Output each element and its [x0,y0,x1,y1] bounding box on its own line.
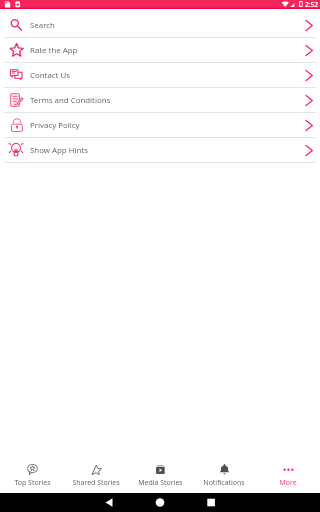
button[interactable]: Shared Stories [64,458,128,493]
button[interactable]: Contact Us [0,63,320,88]
staticText: Search [30,20,55,31]
button[interactable]: Search [0,13,320,38]
staticText: Contact Us [30,70,70,81]
button[interactable]: Top Stories [0,458,64,493]
staticText: Show App Hints [30,145,88,156]
staticText: Notifications [203,478,245,487]
staticText: Top Stories [14,478,51,487]
staticText: Rate the App [30,45,78,56]
button[interactable]: Privacy Policy [0,113,320,138]
staticText: More [279,478,297,487]
button[interactable]: Show App Hints [0,138,320,163]
staticText: Shared Stories [72,478,120,487]
staticText: Terms and Conditions [30,95,111,106]
button[interactable]: Media Stories [128,458,192,493]
staticText: 2:52 [305,0,319,9]
button[interactable]: Terms and Conditions [0,88,320,113]
button[interactable]: More [256,458,320,493]
staticText: Media Stories [138,478,183,487]
staticText: Privacy Policy [30,120,80,131]
button[interactable]: Notifications [192,458,256,493]
button[interactable]: Rate the App [0,38,320,63]
